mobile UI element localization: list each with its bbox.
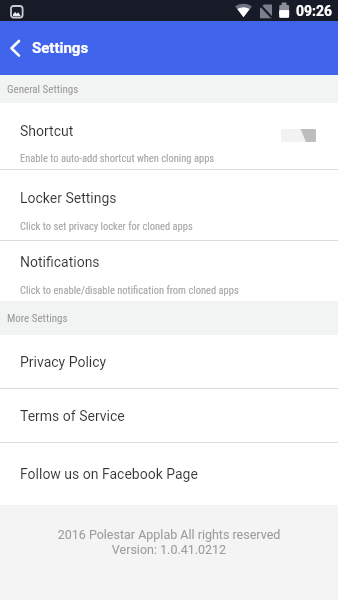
button[interactable]: Settings: [0, 21, 338, 75]
staticText: Click to set privacy locker for cloned a…: [20, 220, 193, 232]
staticText: Click to enable/disable notification fro…: [20, 284, 239, 296]
staticText: Follow us on Facebook Page: [20, 466, 198, 482]
staticText: 09:26: [296, 3, 333, 19]
button[interactable]: Notifications: [0, 241, 338, 301]
staticText: Terms of Service: [20, 408, 125, 424]
staticText: Privacy Policy: [20, 354, 107, 370]
staticText: More Settings: [7, 312, 68, 325]
staticText: Locker Settings: [20, 190, 117, 206]
button[interactable]: Follow us on Facebook Page: [0, 443, 338, 505]
staticText: Settings: [32, 39, 89, 57]
staticText: Notifications: [20, 254, 100, 270]
staticText: Enable to auto-add shortcut when cloning…: [20, 152, 215, 164]
staticText: 2016 Polestar Applab All rights reserved…: [0, 527, 338, 557]
button[interactable]: Shortcut: [0, 103, 338, 169]
button[interactable]: Privacy Policy: [0, 335, 338, 388]
staticText: General Settings: [7, 83, 79, 96]
button[interactable]: Terms of Service: [0, 389, 338, 442]
staticText: Shortcut: [20, 123, 74, 139]
button[interactable]: Locker Settings: [0, 170, 338, 240]
